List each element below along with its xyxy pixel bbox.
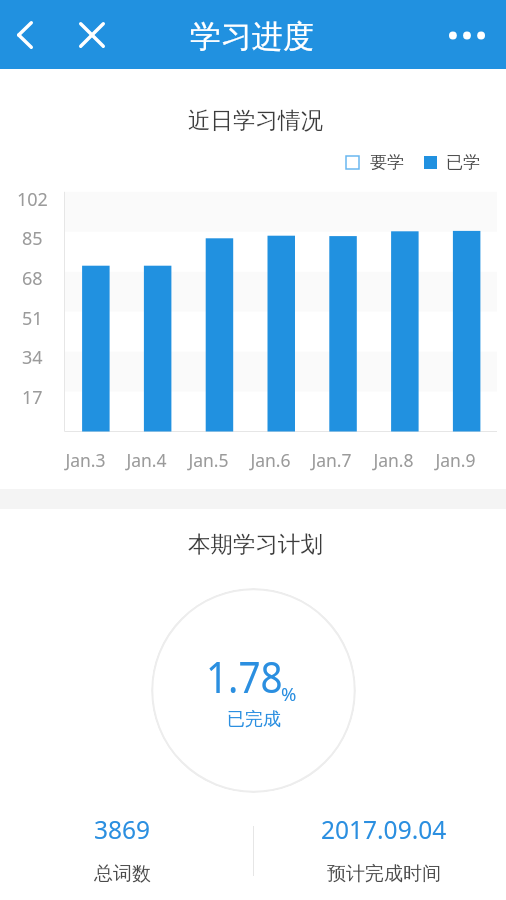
staticText: 51	[22, 306, 43, 331]
staticText: 已学	[446, 152, 480, 173]
staticText: 1.78	[206, 646, 283, 705]
staticText: 总词数	[94, 862, 151, 886]
button[interactable]: 已学	[424, 152, 480, 173]
staticText: %	[281, 681, 297, 706]
staticText: 2017.09.04	[321, 813, 447, 846]
button[interactable]: More options	[443, 12, 491, 58]
button[interactable]: 2017.09.04	[284, 809, 484, 886]
staticText: Jan.3	[65, 448, 106, 472]
button[interactable]: Close	[69, 12, 115, 58]
staticText: Jan.5	[188, 448, 229, 472]
staticText: 34	[22, 345, 43, 370]
staticText: 要学	[370, 152, 404, 173]
staticText: 近日学习情况	[188, 106, 323, 134]
staticText: 3869	[94, 813, 151, 846]
staticText: Jan.4	[126, 448, 167, 472]
button[interactable]: Back	[2, 12, 48, 58]
button[interactable]: 要学	[346, 152, 404, 173]
staticText: 已完成	[227, 708, 281, 731]
staticText: Jan.9	[435, 448, 476, 472]
staticText: Jan.6	[250, 448, 291, 472]
staticText: 预计完成时间	[327, 862, 441, 886]
staticText: Jan.7	[311, 448, 352, 472]
button[interactable]: 3869	[22, 809, 222, 886]
staticText: 学习进度	[190, 17, 314, 56]
staticText: 17	[22, 385, 43, 410]
staticText: 68	[22, 266, 43, 291]
staticText: 85	[22, 226, 43, 251]
staticText: 102	[17, 187, 48, 212]
staticText: Jan.8	[373, 448, 414, 472]
staticText: 本期学习计划	[188, 530, 323, 558]
button[interactable]: 1.78	[151, 588, 356, 793]
